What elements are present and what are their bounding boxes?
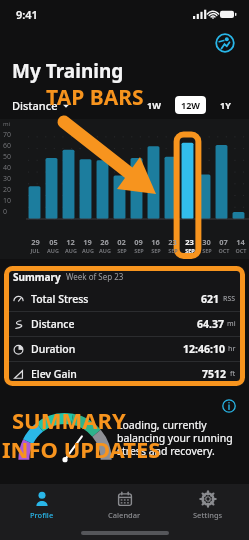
staticText: SEP [151, 247, 161, 254]
staticText: Distance [12, 98, 58, 113]
staticText: ft [230, 369, 236, 379]
staticText: 50 [3, 152, 12, 162]
staticText: 9:41 [16, 7, 38, 22]
button[interactable]: 29 [26, 237, 44, 254]
staticText: 09 [134, 237, 143, 247]
button[interactable]: Elev Gain [4, 362, 245, 386]
button[interactable]: Duration [4, 337, 245, 361]
staticText: SEP [134, 247, 144, 254]
staticText: mi [227, 319, 236, 329]
staticText: SEP [185, 247, 195, 254]
staticText: SEP [117, 247, 127, 254]
staticText: Week of Sep 23 [66, 271, 124, 282]
button[interactable]: 19 [79, 237, 96, 254]
staticText: SUMMARY [12, 405, 126, 435]
button[interactable]: 12W [175, 96, 206, 114]
staticText: AUG [65, 247, 77, 254]
button[interactable]: Account [213, 31, 237, 55]
button[interactable]: 1Y [214, 96, 237, 114]
staticText: JUL [30, 247, 40, 254]
staticText: 20 [3, 185, 12, 195]
staticText: mi [3, 120, 11, 128]
staticText: Duration [31, 342, 76, 356]
staticText: 12W [181, 99, 200, 111]
staticText: 19 [83, 237, 92, 247]
button[interactable]: 26 [96, 237, 113, 254]
button[interactable]: 09 [130, 237, 147, 254]
button[interactable]: Profile [0, 484, 83, 526]
staticText: 40 [3, 163, 12, 173]
staticText: 70 [3, 130, 12, 140]
staticText: Total Stress [31, 292, 89, 306]
button[interactable]: 14 [232, 237, 249, 254]
staticText: 30 [202, 237, 211, 247]
button[interactable]: Calendar [83, 484, 166, 526]
staticText: INFO UPDATES [2, 434, 161, 464]
staticText: 29 [31, 237, 40, 247]
staticText: SEP [168, 247, 178, 254]
staticText: 0 [3, 207, 8, 217]
staticText: 7512 [202, 367, 227, 381]
staticText: OCT [218, 247, 230, 254]
staticText: Profile [30, 510, 54, 520]
staticText: 02 [117, 237, 126, 247]
button[interactable]: 16 [147, 237, 164, 254]
button[interactable]: 07 [215, 237, 232, 254]
staticText: Elev Gain [31, 367, 77, 381]
staticText: 05 [49, 237, 58, 247]
staticText: AUG [82, 247, 94, 254]
staticText: 12:46:10 [183, 342, 225, 356]
staticText: Summary [13, 270, 61, 284]
button[interactable]: Distance [12, 98, 75, 113]
staticText: 14 [236, 237, 245, 247]
staticText: 23 [168, 237, 177, 247]
staticText: 12 [66, 237, 75, 247]
button[interactable]: Distance [4, 312, 245, 336]
button[interactable]: Settings [166, 484, 249, 526]
button[interactable]: 05 [44, 237, 62, 254]
button[interactable]: 02 [113, 237, 130, 254]
staticText: AUG [47, 247, 59, 254]
staticText: hr [228, 344, 236, 354]
button[interactable]: 1W [141, 96, 167, 114]
staticText: RSS [223, 294, 236, 304]
staticText: 07 [219, 237, 228, 247]
button[interactable]: 30 [198, 237, 215, 254]
button[interactable]: 23 [181, 237, 198, 254]
staticText: My Training [12, 58, 124, 84]
staticText: AUG [99, 247, 111, 254]
staticText: Calendar [108, 510, 141, 520]
staticText: SEP [202, 247, 212, 254]
staticText: 60 [3, 141, 12, 151]
staticText: 26 [100, 237, 109, 247]
staticText: OCT [235, 247, 247, 254]
staticText: 10 [3, 196, 12, 206]
button[interactable]: Total Stress [4, 287, 245, 311]
button[interactable]: Info [221, 398, 237, 414]
staticText: 621 [201, 292, 220, 306]
button[interactable]: 12 [62, 237, 79, 254]
button[interactable]: 23 [164, 237, 181, 254]
staticText: Distance [31, 317, 75, 331]
staticText: 1W [147, 99, 161, 111]
staticText: 1Y [220, 99, 231, 111]
staticText: Settings [193, 510, 223, 520]
staticText: TAP BARS [46, 83, 144, 112]
staticText: 64.37 [197, 317, 224, 331]
staticText: 23 [185, 237, 194, 247]
staticText: 16 [151, 237, 160, 247]
staticText: Loading, currently balancing your runnin… [117, 418, 241, 458]
staticText: 30 [3, 174, 12, 184]
